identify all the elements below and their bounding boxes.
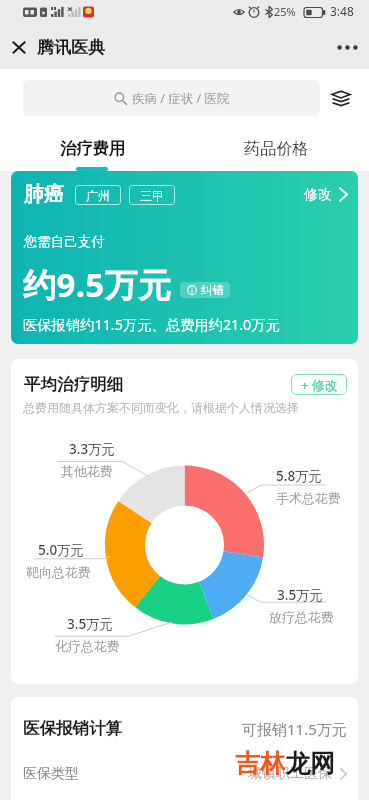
staticText: 腾讯医典 xyxy=(37,37,105,58)
staticText: 您需自己支付 xyxy=(24,233,105,250)
staticText: 3:48 xyxy=(330,3,354,19)
staticText: 3.5万元 xyxy=(67,615,114,633)
staticText: 约9.5万元 xyxy=(23,262,172,307)
staticText: 医保报销约11.5万元、总费用约21.0万元 xyxy=(23,315,280,335)
staticText: 5.8万元 xyxy=(276,467,323,485)
staticText: 其他花费 xyxy=(61,463,113,479)
button[interactable]: Layers xyxy=(326,80,356,116)
staticText: 医保类型 xyxy=(23,765,79,783)
button[interactable]: 药品价格 xyxy=(184,126,369,171)
button[interactable]: 治疗费用 xyxy=(0,126,184,171)
staticText: 3.3万元 xyxy=(69,440,116,458)
staticText: 靶向总花费 xyxy=(26,564,91,580)
staticText: 纠错 xyxy=(201,283,224,297)
staticText: 药品价格 xyxy=(244,138,309,158)
staticText: 手术总花费 xyxy=(276,490,341,506)
staticText: 总费用随具体方案不同而变化，请根据个人情况选择 xyxy=(23,400,299,415)
button[interactable]: + 修改 xyxy=(291,374,347,395)
button[interactable]: 肺癌 xyxy=(11,171,358,344)
staticText: 25% xyxy=(274,4,296,19)
button[interactable]: 医保类型 xyxy=(23,765,347,783)
button[interactable]: 纠错 xyxy=(180,282,230,298)
staticText: 龙网 xyxy=(285,748,335,779)
staticText: 修改 xyxy=(304,186,332,204)
staticText: 广州 xyxy=(86,188,110,203)
staticText: 疾病 / 症状 / 医院 xyxy=(132,90,230,107)
button[interactable]: 疾病 / 症状 / 医院 xyxy=(23,80,320,116)
staticText: 化疗总花费 xyxy=(55,638,120,654)
staticText: 3.5万元 xyxy=(277,586,324,604)
staticText: 放疗总花费 xyxy=(269,609,334,625)
staticText: 5.0万元 xyxy=(38,541,85,559)
staticText: 治疗费用 xyxy=(60,138,125,158)
staticText: 可报销11.5万元 xyxy=(242,719,347,739)
staticText: 医保报销计算 xyxy=(23,718,122,739)
button[interactable]: Close xyxy=(0,26,37,69)
staticText: 吉林 xyxy=(235,748,285,779)
staticText: 肺癌 xyxy=(24,182,64,207)
button[interactable]: More options xyxy=(325,26,369,69)
staticText: 三甲 xyxy=(140,188,164,203)
staticText: 城镇职工医保 xyxy=(248,765,332,783)
staticText: + 修改 xyxy=(301,376,338,394)
staticText: 平均治疗明细 xyxy=(24,374,123,395)
